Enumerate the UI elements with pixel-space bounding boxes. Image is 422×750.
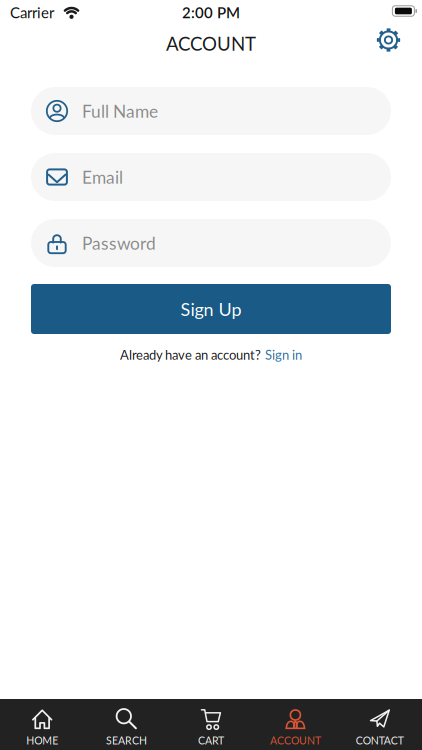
staticText: SEARCH [106,734,147,747]
button[interactable]: SEARCH [84,699,169,747]
staticText: 2:00 PM [182,3,240,21]
staticText: CONTACT [356,734,404,747]
staticText: Full Name [82,101,158,121]
button[interactable]: Sign Up [31,284,391,334]
button[interactable]: Password [31,219,391,267]
button[interactable]: Sign in [265,347,302,363]
button[interactable]: Settings [376,27,422,52]
button[interactable]: HOME [0,699,84,747]
button[interactable]: CART [169,699,253,747]
button[interactable]: ACCOUNT [253,699,338,747]
staticText: HOME [26,734,58,747]
staticText: Sign in [265,347,302,363]
staticText: ACCOUNT [166,32,256,55]
staticText: Email [82,167,123,187]
staticText: Already have an account? [120,347,261,363]
staticText: Sign Up [180,298,241,320]
staticText: ACCOUNT [270,734,321,747]
button[interactable]: Full Name [31,87,391,135]
staticText: Password [82,233,156,253]
staticText: Carrier [10,3,54,21]
staticText: CART [198,734,224,747]
button[interactable]: Email [31,153,391,201]
button[interactable]: CONTACT [338,699,422,747]
